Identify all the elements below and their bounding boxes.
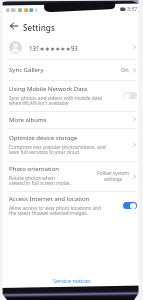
button[interactable]: Switch on bbox=[123, 202, 137, 209]
staticText: Service notices bbox=[53, 277, 91, 284]
staticText: Sync Gallery bbox=[9, 66, 44, 74]
staticText: Compress less popular photos/videos, and… bbox=[9, 144, 106, 156]
button[interactable]: Back bbox=[5, 17, 23, 35]
staticText: Follow system settings bbox=[97, 170, 129, 182]
staticText: 131∗∗∗∗∗∗93 bbox=[29, 44, 78, 52]
staticText: More albums bbox=[9, 116, 47, 124]
staticText: Settings bbox=[23, 22, 55, 33]
button[interactable]: Using Mobile Network Data bbox=[0, 80, 143, 111]
button[interactable]: Access Internet and location bbox=[0, 191, 143, 220]
staticText: Photo orientation bbox=[9, 165, 60, 173]
staticText: On bbox=[121, 66, 129, 74]
staticText: 3:37 bbox=[127, 6, 138, 13]
button[interactable]: Optimize device storage bbox=[0, 128, 143, 161]
button[interactable]: Sync Gallery bbox=[0, 59, 143, 81]
button[interactable]: 131∗∗∗∗∗∗93 bbox=[0, 36, 143, 59]
button[interactable]: Photo orientation bbox=[0, 161, 143, 191]
button[interactable]: Switch off bbox=[123, 92, 137, 99]
button[interactable]: Service notices bbox=[0, 274, 143, 286]
staticText: Using Mobile Network Data bbox=[9, 85, 88, 93]
staticText: Access Internet and location bbox=[9, 195, 90, 203]
staticText: Rotate photos when viewed in full screen… bbox=[9, 175, 71, 187]
button[interactable]: More albums bbox=[0, 111, 143, 128]
staticText: Allow access to view photo locations and… bbox=[9, 205, 102, 217]
staticText: Optimize device storage bbox=[9, 134, 78, 142]
staticText: Sync photos and videos with mobile data … bbox=[9, 95, 102, 107]
